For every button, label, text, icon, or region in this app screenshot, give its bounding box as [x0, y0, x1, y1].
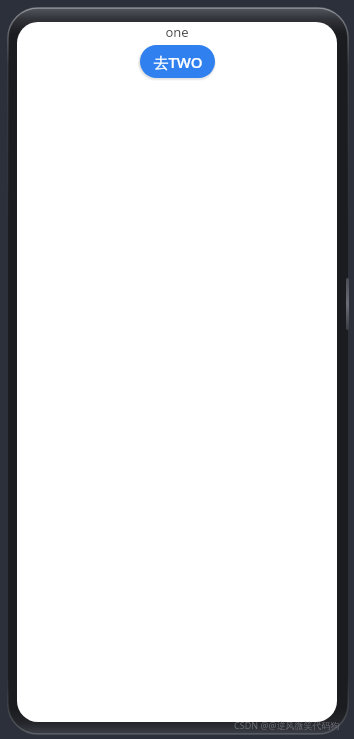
staticText: one — [165, 23, 189, 41]
staticText: 去TWO — [153, 52, 203, 72]
button[interactable]: 去TWO — [140, 45, 215, 78]
staticText: CSDN @@逆风微笑代码狗 — [234, 719, 340, 731]
